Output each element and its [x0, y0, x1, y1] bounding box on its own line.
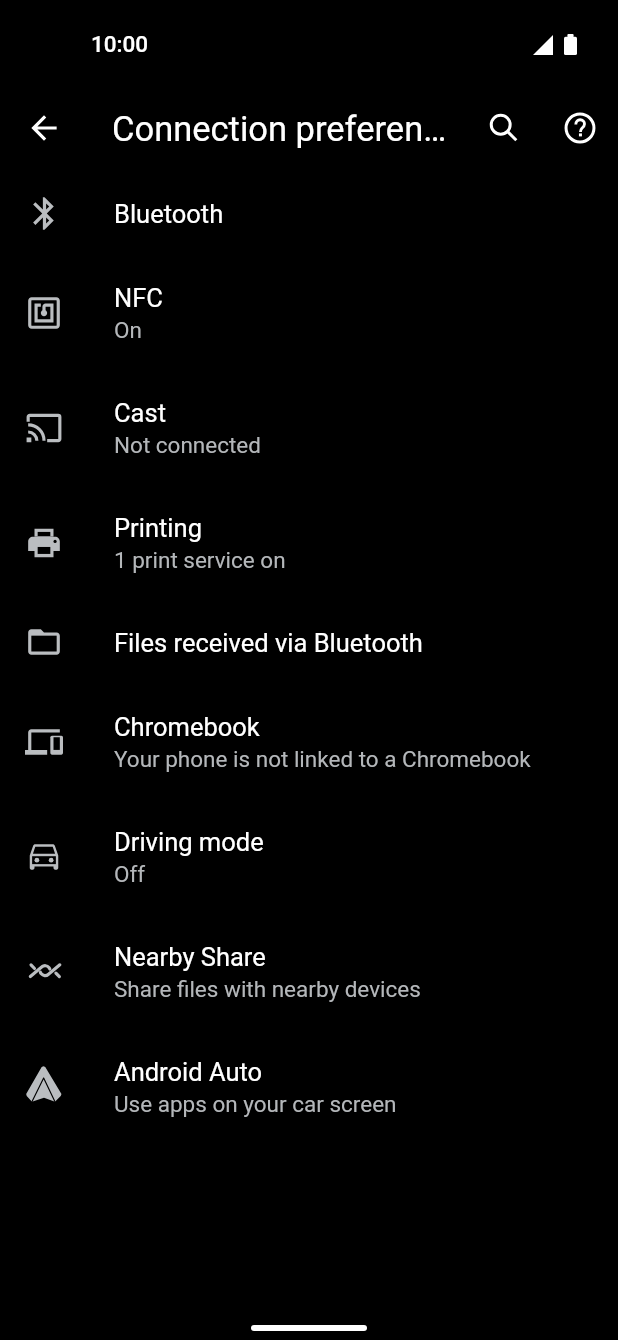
staticText: 10:00 — [91, 31, 149, 57]
button[interactable]: Back — [20, 106, 68, 154]
staticText: Connection preferen… — [112, 109, 447, 149]
button[interactable]: Search — [466, 92, 542, 168]
staticText: Nearby Share — [114, 942, 266, 972]
staticText: Share files with nearby devices — [114, 976, 421, 1002]
staticText: Cast — [114, 398, 166, 428]
staticText: Your phone is not linked to a Chromebook — [114, 746, 531, 772]
staticText: On — [114, 317, 142, 343]
button[interactable]: Files received via Bluetooth — [0, 601, 618, 685]
staticText: Bluetooth — [114, 199, 224, 229]
staticText: Off — [114, 861, 146, 887]
staticText: Android Auto — [114, 1057, 263, 1087]
button[interactable]: Printing — [0, 486, 618, 601]
button[interactable]: Chromebook — [0, 685, 618, 800]
staticText: Files received via Bluetooth — [114, 628, 423, 658]
button[interactable]: Cast — [0, 371, 618, 486]
staticText: Not connected — [114, 432, 261, 458]
button[interactable]: Bluetooth — [0, 172, 618, 256]
staticText: Chromebook — [114, 712, 260, 742]
staticText: Printing — [114, 513, 202, 543]
button[interactable]: Nearby Share — [0, 915, 618, 1030]
button[interactable]: Driving mode — [0, 800, 618, 915]
button[interactable]: NFC — [0, 256, 618, 371]
staticText: 1 print service on — [114, 547, 286, 573]
staticText: Use apps on your car screen — [114, 1091, 397, 1117]
button[interactable]: Android Auto — [0, 1030, 618, 1145]
staticText: NFC — [114, 283, 163, 313]
staticText: Driving mode — [114, 827, 264, 857]
button[interactable]: Help — [542, 92, 618, 168]
